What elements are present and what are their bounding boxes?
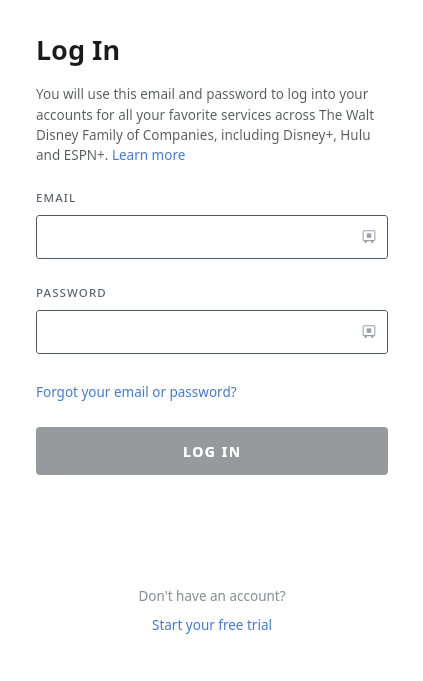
- staticText: PASSWORD: [36, 285, 107, 301]
- button[interactable]: Email autofill: [36, 215, 388, 259]
- button[interactable]: Start your free trial: [152, 616, 272, 634]
- staticText: Forgot your email or password?: [36, 383, 237, 401]
- staticText: LOG IN: [183, 442, 242, 461]
- button[interactable]: Password autofill: [36, 310, 388, 354]
- staticText: EMAIL: [36, 190, 77, 206]
- button[interactable]: LOG IN: [36, 427, 388, 475]
- staticText: Start your free trial: [152, 616, 272, 634]
- staticText: Don't have an account?: [138, 587, 286, 605]
- staticText: Log In: [36, 31, 121, 68]
- button[interactable]: Email autofill: [360, 228, 378, 246]
- button[interactable]: Password autofill: [360, 323, 378, 341]
- staticText: You will use this email and password to …: [36, 85, 388, 164]
- button[interactable]: Forgot your email or password?: [36, 383, 237, 401]
